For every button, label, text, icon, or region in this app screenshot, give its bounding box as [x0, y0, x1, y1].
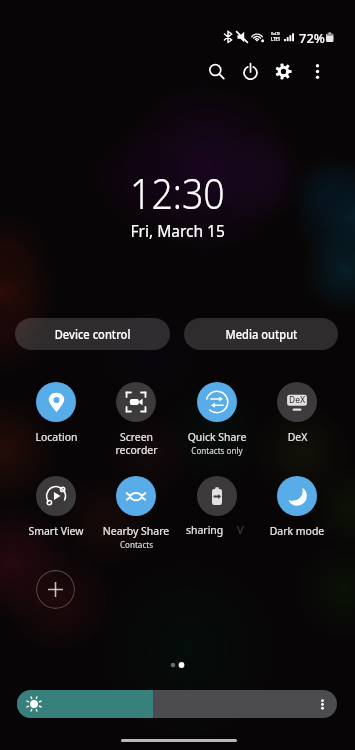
- button[interactable]: Device control: [15, 318, 170, 350]
- staticText: Dark mode: [269, 523, 325, 538]
- button[interactable]: Add tile: [36, 570, 75, 609]
- button[interactable]: Brightness: [17, 690, 337, 718]
- staticText: 72%: [299, 29, 325, 47]
- staticText: LTE1: [271, 36, 280, 43]
- staticText: Screen recorder: [115, 429, 158, 457]
- button[interactable]: Screen recorder: [96, 382, 176, 457]
- staticText: Contacts only: [191, 445, 243, 457]
- button[interactable]: Nearby Share: [96, 476, 176, 551]
- staticText: Media output: [225, 326, 298, 343]
- button[interactable]: Power: [236, 57, 264, 85]
- staticText: Contacts: [120, 539, 153, 551]
- staticText: Location: [35, 429, 78, 444]
- button[interactable]: Dark mode: [257, 476, 337, 538]
- button[interactable]: Smart View: [16, 476, 96, 538]
- button[interactable]: Media output: [184, 318, 338, 350]
- staticText: Quick Share: [188, 429, 246, 444]
- staticText: DeX: [289, 394, 306, 406]
- staticText: Smart View: [28, 523, 84, 538]
- staticText: DeX: [287, 429, 307, 444]
- button[interactable]: Location: [16, 382, 96, 444]
- staticText: V: [237, 522, 244, 537]
- button[interactable]: More options: [303, 57, 331, 85]
- button[interactable]: [177, 476, 257, 538]
- button[interactable]: Quick Share: [177, 382, 257, 457]
- staticText: sharing: [186, 522, 224, 537]
- button[interactable]: Settings: [269, 57, 297, 85]
- staticText: VoLTE: [271, 31, 280, 37]
- button[interactable]: DeX: [257, 382, 337, 444]
- staticText: Fri, March 15: [130, 220, 226, 242]
- button[interactable]: Brightness options: [311, 693, 333, 715]
- staticText: Nearby Share: [103, 523, 169, 538]
- staticText: Device control: [55, 326, 131, 343]
- staticText: 12:30: [130, 163, 225, 222]
- button[interactable]: Search: [202, 57, 230, 85]
